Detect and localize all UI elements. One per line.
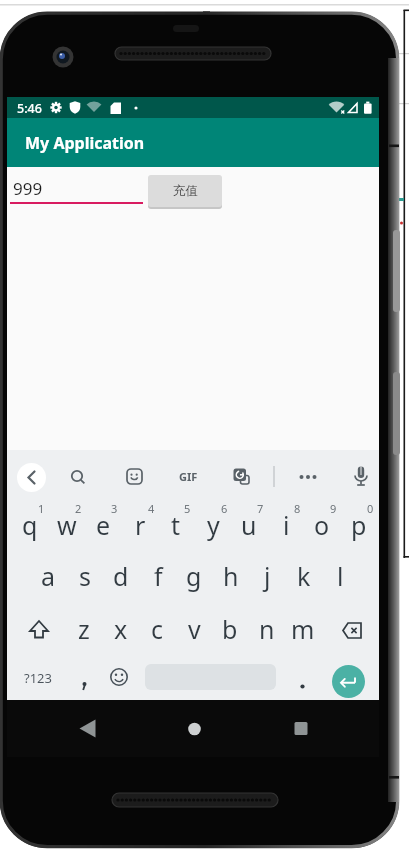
button[interactable] (332, 665, 365, 698)
button[interactable]: c (139, 607, 175, 651)
button[interactable]: f (140, 554, 176, 598)
staticText: u (241, 508, 257, 542)
staticText: 8 (294, 501, 301, 515)
staticText: e (96, 508, 111, 542)
staticText: h (223, 559, 239, 593)
staticText: 999 (13, 177, 43, 199)
button[interactable]: b (212, 607, 248, 651)
staticText: 5:46 (17, 100, 42, 117)
staticText: f (154, 559, 163, 593)
staticText: My Application (25, 132, 145, 154)
button[interactable]: a (30, 554, 66, 598)
button[interactable] (22, 612, 56, 648)
button[interactable] (286, 714, 316, 744)
button[interactable]: z (66, 607, 102, 651)
button[interactable] (118, 460, 150, 492)
staticText: GIF (179, 469, 198, 484)
button[interactable]: y (195, 503, 231, 547)
button[interactable]: u (231, 503, 267, 547)
staticText: 充值 (173, 183, 198, 199)
staticText: q (22, 508, 38, 542)
staticText: p (351, 508, 367, 542)
button[interactable] (179, 713, 210, 744)
button[interactable] (62, 460, 94, 492)
button[interactable]: j (249, 554, 285, 598)
staticText: 9 (330, 501, 337, 515)
button[interactable] (17, 463, 46, 492)
staticText: j (264, 559, 271, 593)
staticText: t (171, 508, 181, 542)
staticText: 0 (367, 501, 374, 515)
staticText: 2 (75, 501, 82, 515)
staticText: 7 (257, 501, 264, 515)
button[interactable]: g (176, 554, 212, 598)
staticText: i (283, 508, 290, 542)
button[interactable] (72, 712, 104, 744)
button[interactable] (345, 460, 377, 492)
button[interactable]: o (304, 503, 340, 547)
button[interactable]: n (249, 607, 285, 651)
button[interactable]: 充值 (148, 175, 222, 207)
staticText: n (259, 612, 275, 646)
button[interactable]: l (322, 554, 358, 598)
button[interactable]: ?123 (20, 668, 56, 688)
staticText: m (291, 612, 315, 646)
staticText: v (188, 612, 201, 646)
button[interactable]: w (49, 503, 85, 547)
staticText: d (113, 559, 129, 593)
staticText: s (79, 559, 91, 593)
button[interactable]: GIF (174, 468, 202, 484)
button[interactable]: e (85, 503, 121, 547)
staticText: a (41, 559, 56, 593)
button[interactable] (292, 460, 324, 492)
button[interactable]: s (67, 554, 103, 598)
staticText: 1 (38, 501, 45, 515)
button[interactable]: i (268, 503, 304, 547)
button[interactable] (101, 657, 138, 697)
staticText: g (186, 559, 202, 593)
button[interactable] (333, 612, 367, 648)
staticText: w (57, 508, 77, 542)
staticText: c (151, 612, 164, 646)
staticText: y (207, 508, 220, 542)
staticText: k (297, 559, 311, 593)
button[interactable] (225, 460, 257, 492)
button[interactable]: m (285, 607, 321, 651)
button[interactable]: q (12, 503, 48, 547)
staticText: 5 (184, 501, 191, 515)
button[interactable]: v (176, 607, 212, 651)
staticText: o (314, 508, 330, 542)
button[interactable]: 999 (11, 177, 45, 199)
staticText: ?123 (24, 669, 52, 687)
staticText: z (78, 612, 90, 646)
staticText: 3 (111, 501, 118, 515)
button[interactable] (284, 657, 321, 697)
button[interactable]: k (286, 554, 322, 598)
button[interactable]: t (158, 503, 194, 547)
button[interactable]: p (341, 503, 377, 547)
staticText: b (222, 612, 238, 646)
staticText: l (337, 559, 344, 593)
button[interactable]: r (122, 503, 158, 547)
button[interactable]: d (103, 554, 139, 598)
staticText: x (114, 612, 128, 646)
staticText: 6 (221, 501, 228, 515)
button[interactable]: h (213, 554, 249, 598)
staticText: 4 (148, 501, 155, 515)
button[interactable]: x (103, 607, 139, 651)
button[interactable] (66, 657, 103, 697)
staticText: r (135, 508, 146, 542)
